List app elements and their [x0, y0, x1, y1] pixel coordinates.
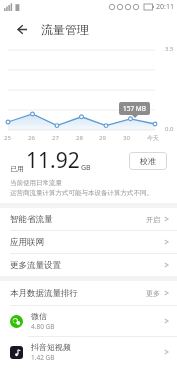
staticText: 更多流量设置 — [10, 260, 164, 271]
staticText: 11.92 — [26, 146, 80, 175]
staticText: 28 — [76, 134, 83, 142]
staticText: 26 — [28, 134, 35, 142]
staticText: 抖音短视频 — [31, 342, 71, 352]
staticText: 当前使用日常流量 — [10, 179, 62, 187]
button[interactable]: 智能省流量 — [0, 208, 177, 231]
button[interactable]: 校准 — [129, 152, 167, 170]
button[interactable]: 本月数据流量排行 — [0, 281, 177, 305]
staticText: 开启 — [146, 215, 160, 224]
staticText: 30 — [123, 134, 130, 142]
staticText: 应用联网 — [10, 237, 164, 248]
button[interactable]: 更多流量设置 — [0, 254, 177, 276]
staticText: 本月数据流量排行 — [10, 288, 146, 299]
staticText: 157 MB — [123, 104, 146, 113]
staticText: 今天 — [147, 134, 159, 142]
button[interactable]: 微信 — [0, 306, 177, 337]
staticText: 25 — [4, 134, 11, 142]
button[interactable]: 应用联网 — [0, 231, 177, 254]
staticText: 运营商流量计算方式可能与本设备计算方式不同。 — [10, 189, 153, 197]
staticText: 更多 — [146, 289, 160, 298]
staticText: 3.5 — [165, 45, 174, 53]
staticText: GB — [81, 163, 91, 173]
staticText: 微信 — [31, 311, 47, 321]
staticText: 0.0 — [165, 125, 174, 133]
staticText: 智能省流量 — [10, 214, 146, 225]
staticText: 4.80 GB — [31, 322, 55, 331]
staticText: 27 — [52, 134, 59, 142]
button[interactable]: 抖音短视频 — [0, 337, 177, 367]
button[interactable]: Back — [10, 18, 32, 40]
staticText: 20:11 — [156, 2, 174, 12]
staticText: 29 — [99, 134, 106, 142]
staticText: 流量管理 — [41, 22, 89, 37]
staticText: 已用 — [10, 164, 24, 173]
staticText: 校准 — [140, 156, 156, 166]
staticText: 1.42 GB — [31, 353, 55, 362]
